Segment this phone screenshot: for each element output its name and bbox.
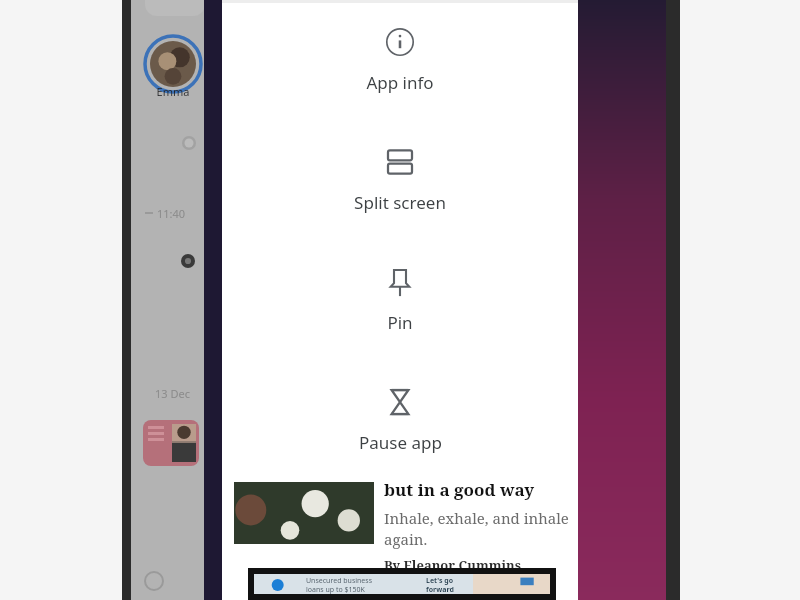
other: Pin	[385, 267, 415, 297]
staticText: Split screen	[354, 191, 446, 214]
staticText: Unsecured business loans up to $150K	[306, 576, 373, 594]
button[interactable]: Split screen	[222, 120, 578, 240]
other: Pause app	[385, 387, 415, 417]
button[interactable]: App info	[222, 0, 578, 120]
staticText: App info	[366, 71, 434, 94]
button[interactable]: Pause app	[222, 360, 578, 480]
staticText: but in a good way	[384, 478, 535, 501]
staticText: Let's go forward	[426, 576, 454, 594]
staticText: 11:40	[157, 206, 186, 221]
staticText: 13 Dec	[155, 386, 190, 401]
staticText: Pause app	[359, 431, 442, 454]
staticText: Pin	[387, 311, 413, 334]
staticText: Emma	[145, 84, 201, 99]
other: App info	[385, 27, 415, 57]
button[interactable]: Pin	[222, 240, 578, 360]
other: Split screen	[385, 147, 415, 177]
staticText: By Eleanor Cummins	[384, 556, 522, 574]
staticText: Inhale, exhale, and inhale again.	[384, 508, 569, 550]
